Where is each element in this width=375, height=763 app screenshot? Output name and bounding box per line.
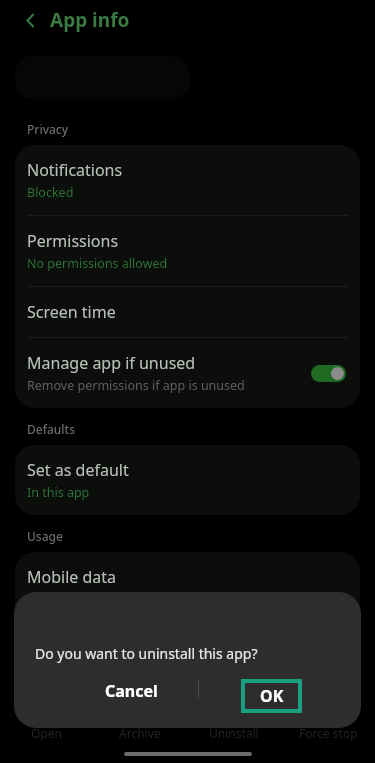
- button[interactable]: Archive: [93, 722, 187, 744]
- staticText: Defaults: [27, 421, 76, 437]
- staticText: No permissions allowed: [27, 255, 168, 272]
- staticText: Battery: [27, 637, 82, 659]
- button[interactable]: Set as default: [15, 445, 360, 515]
- staticText: Remove permissions if app is unused: [27, 377, 245, 394]
- button[interactable]: Mobile data: [15, 552, 360, 622]
- staticText: Manage app if unused: [27, 352, 196, 374]
- button[interactable]: Cancel: [72, 675, 190, 707]
- staticText: Archive: [119, 725, 161, 741]
- button[interactable]: Manage app if unused: [15, 338, 360, 408]
- staticText: Cancel: [105, 680, 158, 702]
- staticText: In this app: [27, 484, 90, 501]
- staticText: Notifications: [27, 159, 123, 181]
- button[interactable]: Uninstall: [187, 722, 281, 744]
- staticText: Usage: [27, 528, 63, 544]
- button[interactable]: Open: [0, 722, 93, 744]
- staticText: Blocked: [27, 184, 74, 201]
- button[interactable]: Battery: [15, 623, 360, 673]
- button[interactable]: Permissions: [15, 216, 360, 286]
- button[interactable]: Force stop: [281, 722, 375, 744]
- staticText: Privacy: [27, 121, 69, 137]
- staticText: Permissions: [27, 230, 119, 252]
- button[interactable]: Notifications: [15, 145, 360, 215]
- button[interactable]: Screen time: [15, 287, 360, 337]
- staticText: Set as default: [27, 459, 129, 481]
- other: Manage app if unused toggle: [311, 365, 346, 382]
- staticText: Uninstall: [209, 725, 259, 741]
- staticText: Open: [31, 725, 62, 741]
- staticText: Do you want to uninstall this app?: [35, 644, 258, 663]
- staticText: Force stop: [299, 725, 358, 741]
- button[interactable]: OK: [241, 679, 302, 713]
- button[interactable]: Back: [16, 6, 44, 34]
- staticText: No data used: [27, 591, 106, 608]
- staticText: OK: [260, 685, 284, 707]
- staticText: Screen time: [27, 301, 116, 323]
- staticText: App info: [50, 7, 130, 33]
- staticText: Mobile data: [27, 566, 117, 588]
